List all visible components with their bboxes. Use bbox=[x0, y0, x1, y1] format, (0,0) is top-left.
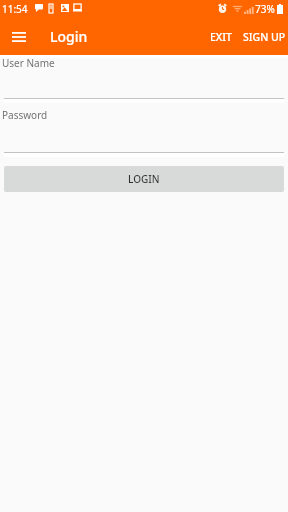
button[interactable]: SIGN UP bbox=[243, 18, 286, 55]
staticText: EXIT bbox=[210, 30, 232, 44]
staticText: LOGIN bbox=[128, 172, 160, 186]
button[interactable]: Password bbox=[0, 108, 288, 153]
staticText: 73% bbox=[255, 2, 275, 16]
staticText: SIGN UP bbox=[243, 30, 286, 44]
staticText: Password bbox=[2, 108, 48, 122]
button[interactable]: User Name bbox=[0, 56, 288, 99]
button[interactable]: EXIT bbox=[210, 18, 232, 55]
staticText: Login bbox=[50, 27, 88, 46]
button[interactable]: Open navigation menu bbox=[0, 18, 38, 55]
staticText: User Name bbox=[2, 56, 55, 70]
staticText: 11:54 bbox=[2, 2, 28, 16]
button[interactable]: LOGIN bbox=[4, 166, 284, 192]
